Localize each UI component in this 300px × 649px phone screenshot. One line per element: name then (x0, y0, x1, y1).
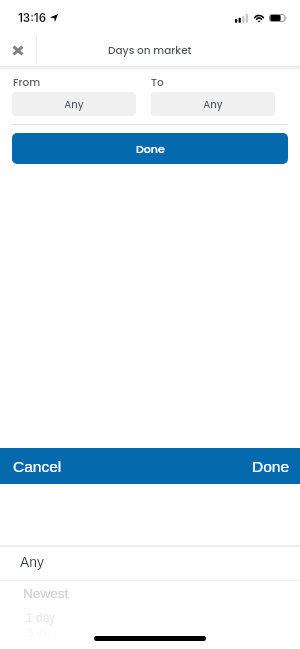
button[interactable]: Done (12, 133, 288, 164)
staticText: From (13, 75, 41, 90)
staticText: To (151, 75, 164, 90)
staticText: Days on market (108, 43, 192, 58)
staticText: Done (252, 458, 290, 475)
button[interactable]: Done (220, 448, 300, 484)
button[interactable]: Cancel (6, 448, 111, 484)
button[interactable]: Any (12, 92, 136, 116)
staticText: Cancel (13, 458, 62, 475)
button[interactable]: Close (5, 36, 30, 66)
staticText: Any (203, 97, 223, 111)
staticText: Any (20, 555, 44, 570)
staticText: Done (136, 141, 165, 156)
staticText: Any (64, 97, 84, 111)
staticText: 13:16 (18, 11, 47, 25)
button[interactable]: Any (151, 92, 275, 116)
staticText: 1 day (26, 611, 56, 624)
staticText: Newest (23, 586, 69, 601)
